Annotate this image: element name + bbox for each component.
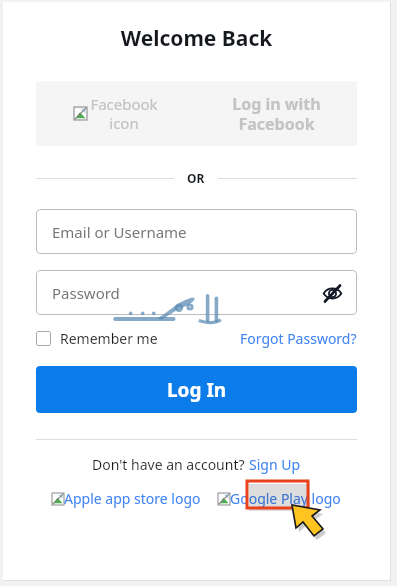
button[interactable]: Remember me [36,329,158,348]
button[interactable]: Apple app store logo [52,489,201,508]
staticText: Remember me [60,329,158,348]
button[interactable]: Email or Username [36,209,357,254]
button[interactable]: Log In [36,366,357,413]
button[interactable]: Show password [321,282,343,304]
staticText: Log in with Facebook [232,93,321,134]
staticText: Apple app store logo [64,489,201,508]
staticText: Don't have an account? [92,455,245,474]
staticText: Log In [167,377,227,403]
staticText: Google Play logo [230,489,341,508]
staticText: OR [187,170,205,186]
button[interactable]: Password [36,270,357,315]
staticText: Welcome Back [3,24,390,53]
button[interactable]: Facebook icon [36,81,357,146]
staticText: Email or Username [52,222,187,242]
staticText: Password [52,283,120,303]
button[interactable]: Forgot Password? [240,329,357,348]
staticText: Facebook icon [90,94,158,133]
button[interactable]: Google Play logo [218,489,341,508]
button[interactable]: Sign Up [249,455,301,474]
